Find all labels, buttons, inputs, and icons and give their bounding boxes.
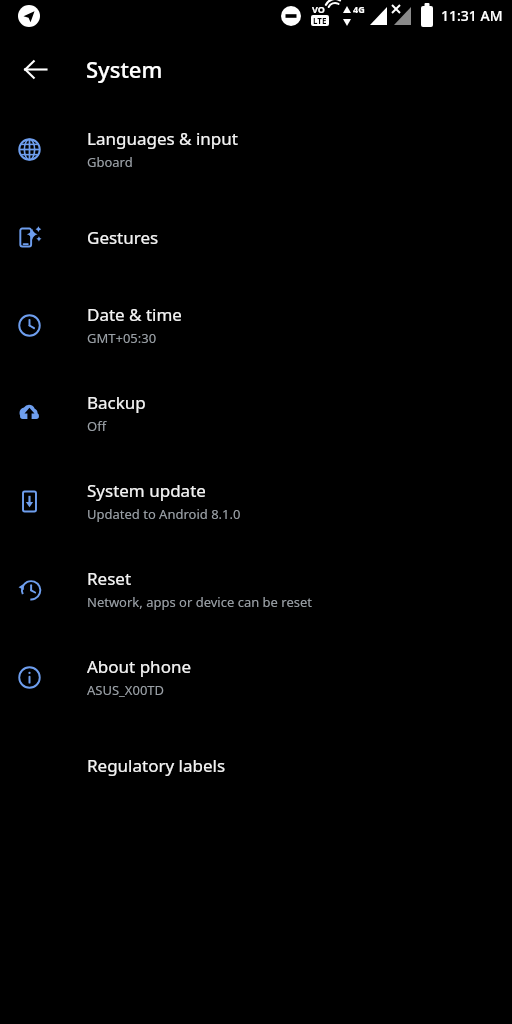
staticText: Gestures [87, 226, 159, 249]
staticText: Backup [87, 391, 146, 414]
staticText: Network, apps or device can be reset [87, 593, 312, 611]
staticText: Updated to Android 8.1.0 [87, 505, 241, 523]
staticText: Gboard [87, 153, 133, 171]
staticText: ASUS_X00TD [87, 681, 165, 699]
button[interactable]: Backup [0, 369, 512, 457]
button[interactable]: Back [11, 45, 59, 93]
staticText: LTE [313, 15, 327, 26]
staticText: Regulatory labels [87, 754, 226, 777]
button[interactable]: Date & time [0, 281, 512, 369]
staticText: About phone [87, 655, 192, 678]
staticText: Reset [87, 567, 132, 590]
staticText: GMT+05:30 [87, 329, 157, 347]
button[interactable]: Languages & input [0, 105, 512, 193]
staticText: System update [87, 479, 206, 502]
button[interactable]: Regulatory labels [0, 721, 512, 809]
staticText: Date & time [87, 303, 182, 326]
staticText: 11:31 AM [441, 6, 503, 25]
staticText: Off [87, 417, 107, 435]
button[interactable]: About phone [0, 633, 512, 721]
staticText: 4G [353, 3, 365, 15]
button[interactable]: Gestures [0, 193, 512, 281]
staticText: System [86, 54, 163, 84]
staticText: VO [312, 3, 325, 15]
button[interactable]: Reset [0, 545, 512, 633]
button[interactable]: System update [0, 457, 512, 545]
staticText: Languages & input [87, 127, 238, 150]
